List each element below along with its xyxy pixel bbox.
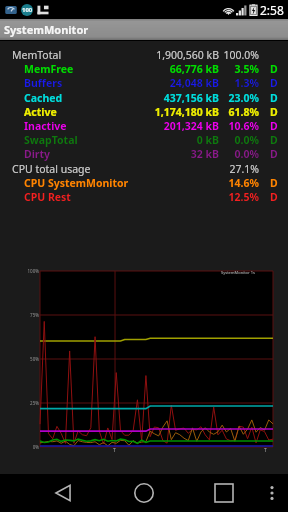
- staticText: 0%: [25, 444, 39, 450]
- staticText: MemFree: [24, 62, 74, 76]
- staticText: D: [270, 133, 288, 147]
- staticText: SystemMonitor: [4, 22, 89, 37]
- staticText: D: [270, 176, 288, 190]
- button[interactable]: SystemMonitor: [0, 19, 288, 40]
- staticText: CPU total usage: [12, 162, 91, 176]
- staticText: SystemMonitor 1s: [221, 270, 255, 275]
- staticText: Inactive: [24, 119, 67, 133]
- button[interactable]: Active: [0, 105, 288, 119]
- staticText: CPU SystemMonitor: [24, 176, 129, 190]
- staticText: D: [270, 76, 288, 90]
- button[interactable]: More options: [256, 474, 288, 512]
- staticText: 75%: [25, 312, 39, 318]
- button[interactable]: SwapTotal: [0, 133, 288, 147]
- staticText: 50%: [25, 356, 39, 362]
- staticText: 25%: [25, 400, 39, 406]
- staticText: Cached: [24, 91, 63, 105]
- staticText: D: [270, 105, 288, 119]
- button[interactable]: CPU total usage: [0, 162, 288, 176]
- staticText: D: [270, 62, 288, 76]
- button[interactable]: Recent apps: [202, 474, 245, 512]
- staticText: 1,900,560 kB: [129, 48, 219, 62]
- staticText: D: [270, 91, 288, 105]
- staticText: 23.0%: [221, 91, 259, 105]
- staticText: 437,156 kB: [129, 91, 219, 105]
- staticText: 32 kB: [129, 147, 219, 161]
- staticText: 2:58: [260, 2, 284, 18]
- staticText: 3.5%: [221, 62, 259, 76]
- staticText: D: [270, 190, 288, 204]
- staticText: MemTotal: [12, 48, 62, 62]
- staticText: 1,174,180 kB: [129, 105, 219, 119]
- staticText: 0 kB: [129, 133, 219, 147]
- staticText: 12.5%: [221, 190, 259, 204]
- staticText: 14.6%: [221, 176, 259, 190]
- staticText: CPU Rest: [24, 190, 71, 204]
- staticText: D: [270, 119, 288, 133]
- button[interactable]: CPU SystemMonitor: [0, 176, 288, 190]
- staticText: 0.0%: [221, 133, 259, 147]
- button[interactable]: Dirty: [0, 147, 288, 161]
- button[interactable]: Cached: [0, 91, 288, 105]
- button[interactable]: CPU Rest: [0, 190, 288, 204]
- staticText: 24,048 kB: [129, 76, 219, 90]
- button[interactable]: Back: [41, 474, 84, 512]
- staticText: SwapTotal: [24, 133, 78, 147]
- staticText: 27.1%: [221, 162, 259, 176]
- staticText: T: [113, 447, 116, 454]
- staticText: 66,776 kB: [129, 62, 219, 76]
- button[interactable]: MemFree: [0, 62, 288, 76]
- staticText: Dirty: [24, 147, 51, 161]
- staticText: 100: [22, 6, 33, 14]
- button[interactable]: Buffers: [0, 76, 288, 90]
- staticText: 201,324 kB: [129, 119, 219, 133]
- button[interactable]: Inactive: [0, 119, 288, 133]
- button[interactable]: Home: [122, 474, 165, 512]
- staticText: Active: [24, 105, 57, 119]
- staticText: 0.0%: [221, 147, 259, 161]
- staticText: 61.8%: [221, 105, 259, 119]
- staticText: 1.3%: [221, 76, 259, 90]
- staticText: Buffers: [24, 76, 63, 90]
- staticText: 100%: [25, 268, 39, 274]
- staticText: 100.0%: [221, 48, 259, 62]
- staticText: 10.6%: [221, 119, 259, 133]
- button[interactable]: MemTotal: [0, 48, 288, 62]
- staticText: D: [270, 147, 288, 161]
- staticText: T: [264, 447, 267, 454]
